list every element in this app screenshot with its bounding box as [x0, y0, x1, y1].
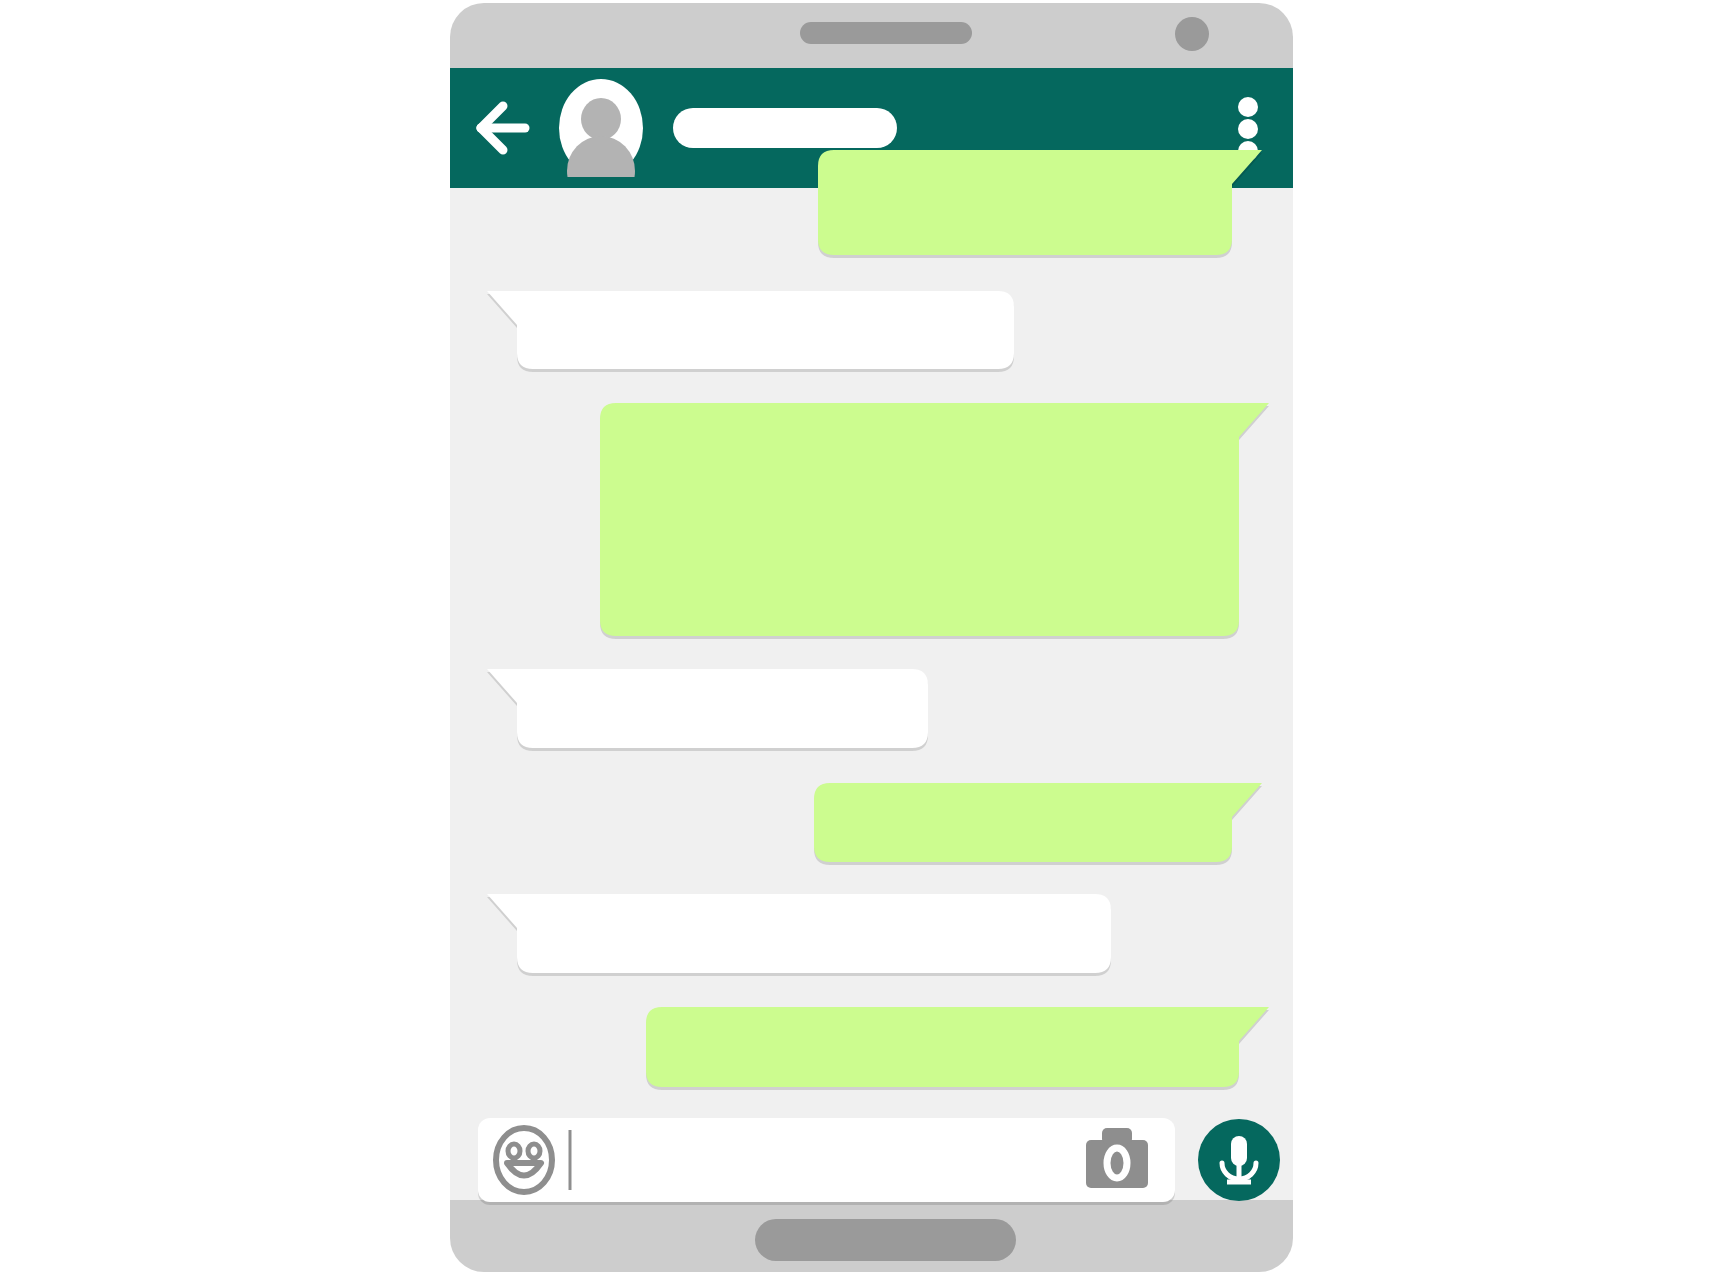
button[interactable]: Contact profile photo — [558, 78, 644, 178]
button[interactable]: Back — [470, 96, 536, 160]
button[interactable]: Camera — [1078, 1124, 1158, 1196]
button[interactable]: Record voice message — [1198, 1119, 1280, 1201]
button[interactable]: More options — [1218, 86, 1280, 172]
button[interactable]: Emoji — [494, 1126, 556, 1194]
button[interactable]: Contact name — [660, 96, 910, 160]
button[interactable]: Message input — [478, 1118, 1175, 1202]
